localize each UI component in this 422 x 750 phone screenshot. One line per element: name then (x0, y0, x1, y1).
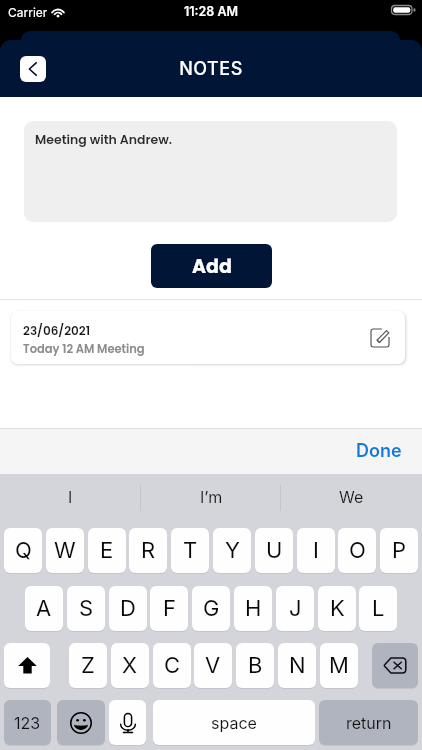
button[interactable]: O (338, 528, 376, 573)
staticText: R (141, 537, 156, 564)
button[interactable]: Back (20, 56, 46, 82)
staticText: 23/06/2021 (23, 322, 91, 339)
staticText: N (289, 652, 306, 679)
button[interactable]: Emoji (57, 700, 105, 745)
button[interactable]: E (88, 528, 126, 573)
button[interactable]: W (46, 528, 84, 573)
staticText: U (266, 537, 283, 564)
staticText: T (183, 537, 198, 564)
button[interactable]: A (25, 586, 63, 631)
staticText: return (346, 713, 392, 732)
staticText: space (211, 713, 257, 732)
staticText: Add (192, 253, 232, 280)
button[interactable]: C (153, 643, 191, 688)
button[interactable]: Add (151, 244, 272, 288)
staticText: We (339, 487, 364, 506)
staticText: P (392, 537, 407, 564)
button[interactable]: Done (356, 440, 402, 462)
button[interactable]: Edit note (371, 329, 389, 347)
staticText: J (289, 595, 302, 622)
button[interactable]: V (194, 643, 232, 688)
button[interactable]: P (380, 528, 418, 573)
button[interactable]: I (297, 528, 335, 573)
button[interactable]: H (234, 586, 272, 631)
staticText: C (164, 652, 181, 679)
button[interactable]: J (276, 586, 314, 631)
staticText: Carrier (8, 5, 48, 20)
button[interactable]: We (281, 474, 422, 518)
staticText: I (68, 487, 73, 506)
staticText: X (122, 652, 138, 679)
button[interactable]: return (319, 700, 418, 745)
button[interactable]: U (255, 528, 293, 573)
staticText: I (313, 537, 319, 564)
staticText: Y (225, 537, 240, 564)
button[interactable]: G (192, 586, 230, 631)
button[interactable]: N (278, 643, 316, 688)
button[interactable]: Dictate (109, 700, 146, 745)
button[interactable]: Backspace (372, 643, 418, 688)
button[interactable]: F (150, 586, 188, 631)
button[interactable]: R (129, 528, 167, 573)
staticText: Today 12 AM Meeting (23, 341, 145, 357)
staticText: Q (15, 537, 32, 564)
staticText: M (329, 652, 349, 679)
staticText: O (349, 537, 366, 564)
staticText: F (163, 595, 176, 622)
staticText: K (330, 595, 345, 622)
button[interactable]: Y (213, 528, 251, 573)
staticText: H (245, 595, 262, 622)
button[interactable]: space (153, 700, 315, 745)
button[interactable]: I’m (141, 474, 282, 518)
button[interactable]: Shift (4, 643, 50, 688)
staticText: 123 (14, 713, 41, 732)
staticText: B (248, 652, 263, 679)
button[interactable]: T (171, 528, 209, 573)
button[interactable]: Meeting with Andrew. (24, 121, 397, 222)
staticText: V (205, 652, 221, 679)
staticText: E (100, 537, 114, 564)
button[interactable]: D (109, 586, 147, 631)
button[interactable]: L (359, 586, 397, 631)
button[interactable]: S (67, 586, 105, 631)
staticText: NOTES (0, 58, 422, 80)
staticText: Done (356, 440, 402, 462)
staticText: A (36, 595, 52, 622)
button[interactable]: X (111, 643, 149, 688)
button[interactable]: M (320, 643, 358, 688)
staticText: L (372, 595, 385, 622)
staticText: W (54, 537, 76, 564)
button[interactable]: Numbers and symbols (4, 700, 51, 745)
staticText: I’m (200, 487, 223, 506)
staticText: D (120, 595, 136, 622)
button[interactable]: I (0, 474, 141, 518)
staticText: G (203, 595, 220, 622)
staticText: Z (81, 652, 95, 679)
button[interactable]: Q (4, 528, 42, 573)
staticText: Meeting with Andrew. (35, 131, 173, 148)
button[interactable]: Z (69, 643, 107, 688)
button[interactable]: B (236, 643, 274, 688)
staticText: S (79, 595, 94, 622)
button[interactable]: K (318, 586, 356, 631)
button[interactable]: 23/06/2021 (11, 311, 405, 364)
staticText: 11:28 AM (0, 4, 422, 19)
